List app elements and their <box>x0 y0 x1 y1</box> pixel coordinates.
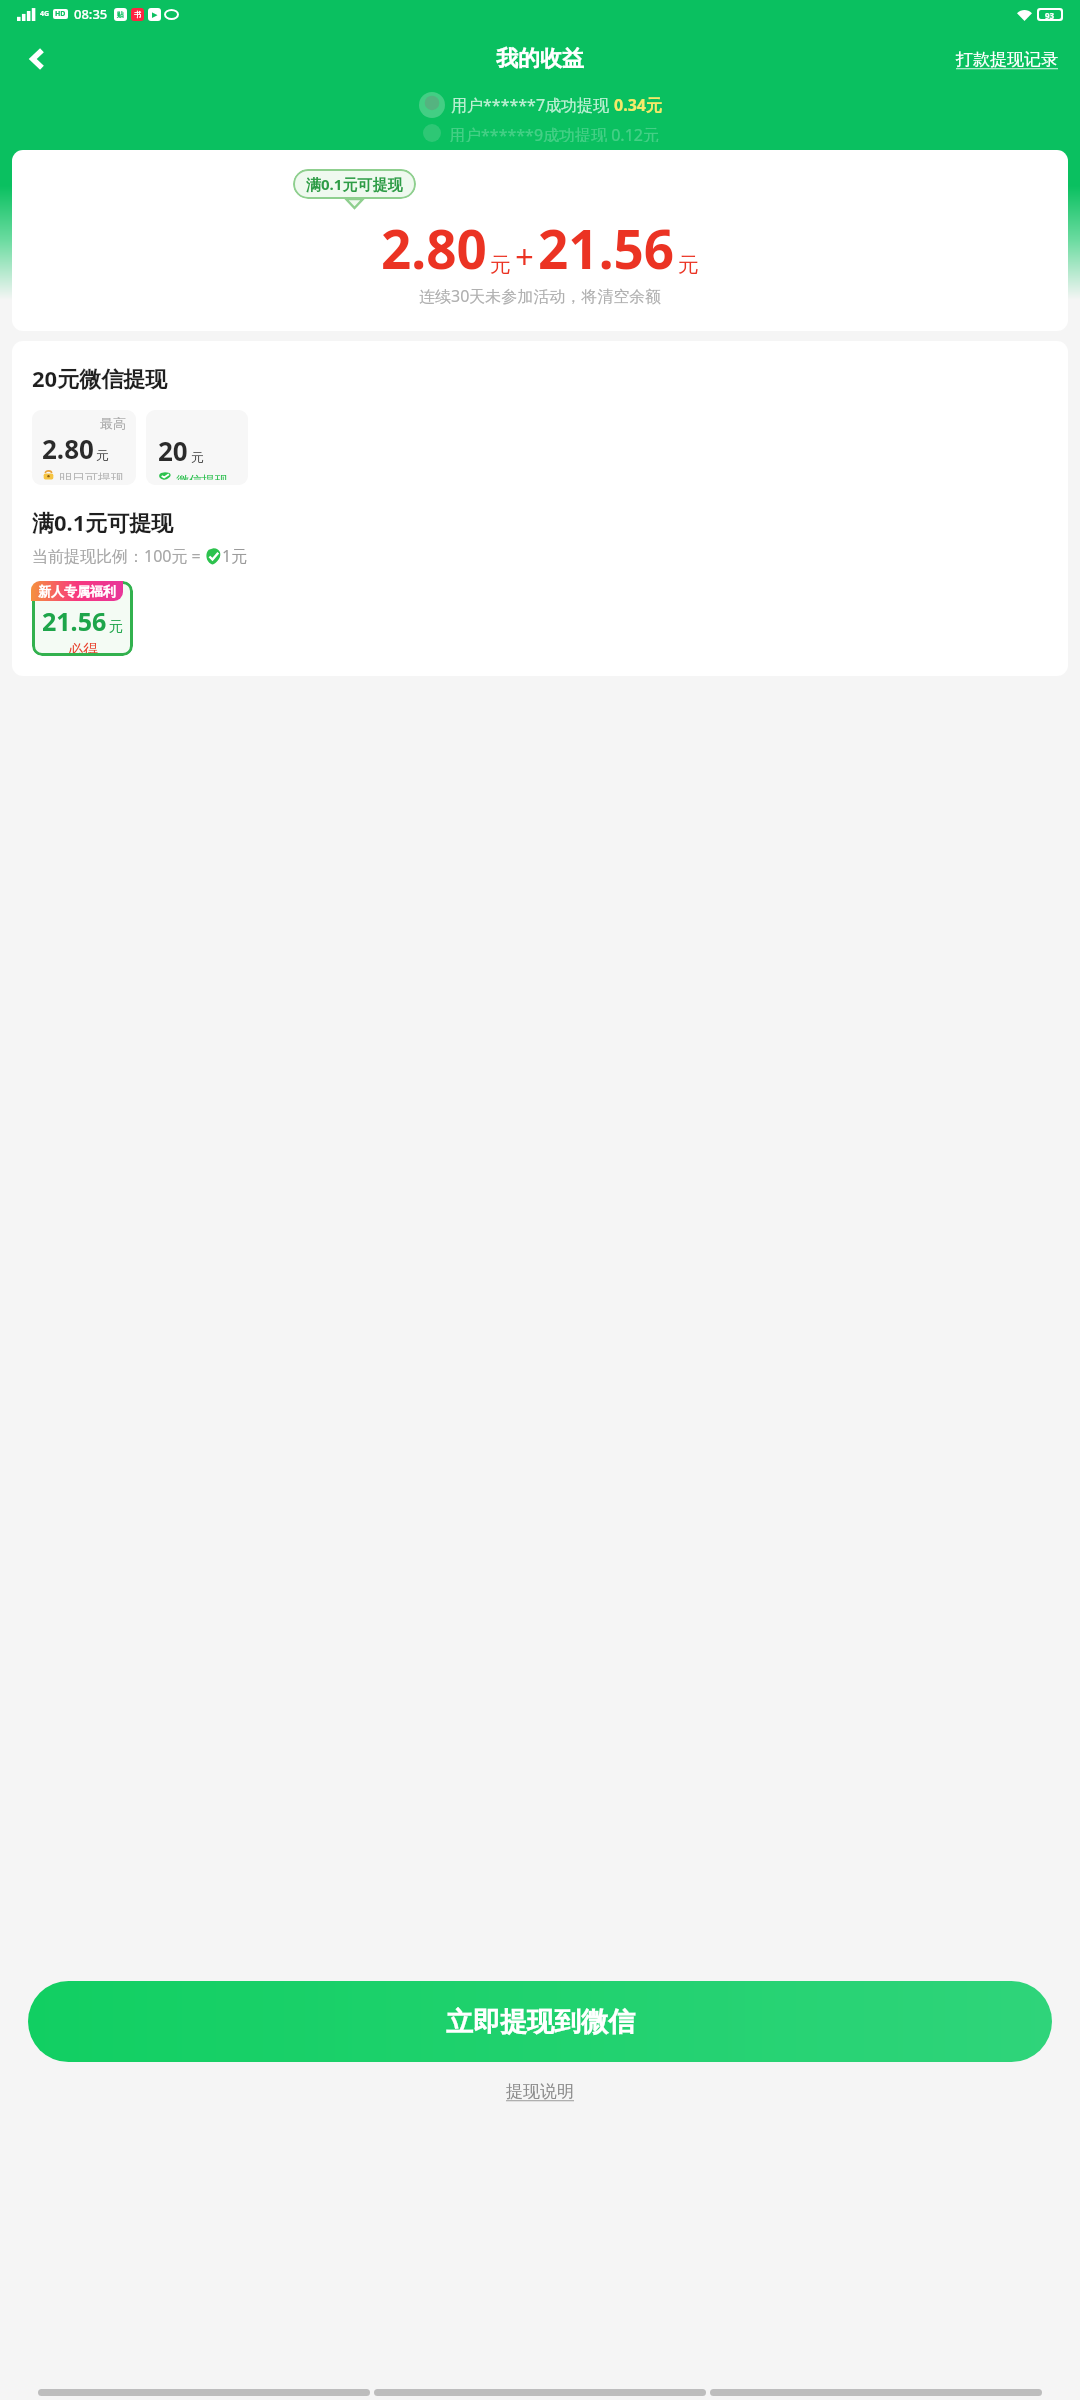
staticText: 当前提现比例：100元 = <box>32 545 205 567</box>
staticText: 0.34元 <box>614 94 662 116</box>
staticText: 新人专属福利 <box>38 583 116 599</box>
staticText: 用户******7成功提现 <box>451 94 614 116</box>
staticText: 21.56 <box>538 212 675 284</box>
staticText: 贴 <box>117 10 124 19</box>
button[interactable]: 20 <box>146 410 248 485</box>
button[interactable]: 提现说明 <box>506 2081 574 2102</box>
staticText: + <box>515 234 534 279</box>
staticText: 元 <box>490 252 511 278</box>
staticText: 满0.1元可提现 <box>306 174 403 194</box>
staticText: 1元 <box>222 545 248 567</box>
staticText: 连续30天未参加活动，将清空余额 <box>419 285 662 307</box>
staticText: 21.56 <box>42 604 107 638</box>
staticText: 满0.1元可提现 <box>32 507 174 537</box>
staticText: ▶ <box>152 11 158 19</box>
button[interactable]: 立即提现到微信 <box>28 1981 1052 2062</box>
staticText: 微信提现 <box>176 472 228 480</box>
staticText: 4G <box>40 9 50 19</box>
button[interactable]: 最高 <box>32 410 136 485</box>
staticText: 元 <box>678 252 699 278</box>
button[interactable]: 返回 <box>10 31 66 87</box>
button[interactable]: 打款提现记录 <box>956 49 1058 70</box>
staticText: 最高 <box>100 415 126 431</box>
staticText: 元 <box>191 449 204 465</box>
staticText: 2.80 <box>381 212 487 284</box>
staticText: 93 <box>1045 10 1055 19</box>
staticText: 20 <box>158 433 188 468</box>
staticText: 必得 <box>68 641 98 656</box>
staticText: 书 <box>134 10 141 19</box>
staticText: 20元微信提现 <box>32 363 168 393</box>
staticText: 打款提现记录 <box>956 49 1058 70</box>
staticText: HD <box>55 9 66 19</box>
staticText: 元 <box>109 618 123 636</box>
staticText: 明日可提现 <box>59 470 124 480</box>
staticText: 我的收益 <box>496 45 584 73</box>
staticText: 用户******9成功提现 0.12元 <box>449 124 659 142</box>
staticText: 08:35 <box>74 5 108 23</box>
staticText: 2.80 <box>42 431 94 466</box>
button[interactable]: 21.56 <box>32 581 133 656</box>
staticText: 立即提现到微信 <box>446 2005 635 2039</box>
staticText: 元 <box>96 447 109 463</box>
staticText: 提现说明 <box>506 2081 574 2102</box>
